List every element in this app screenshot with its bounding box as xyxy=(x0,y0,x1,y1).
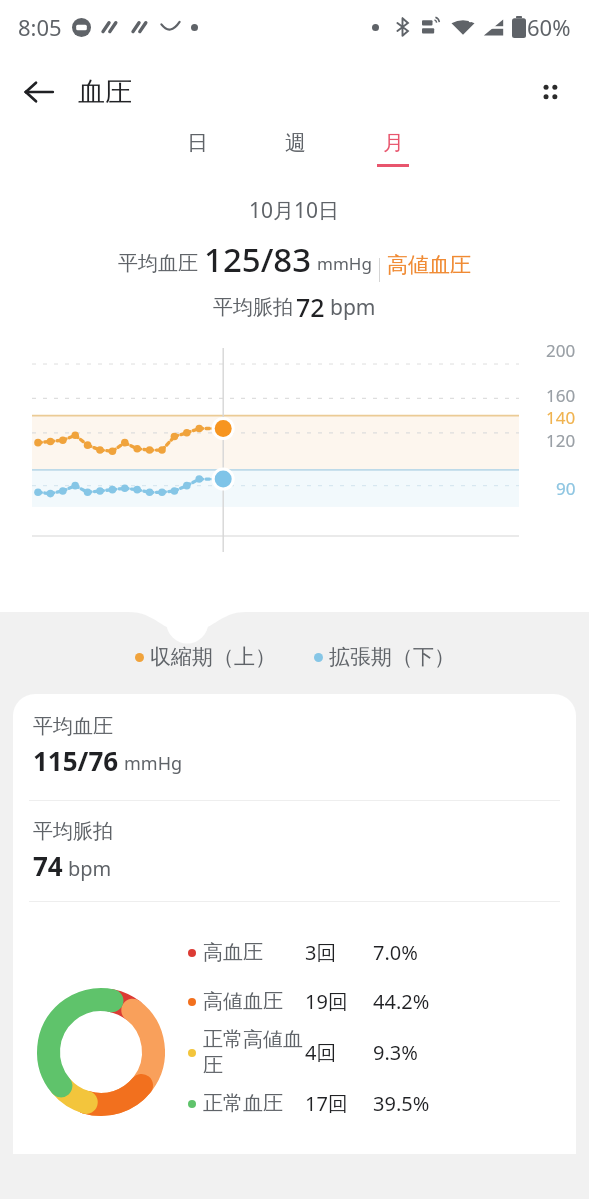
staticText: 74 xyxy=(33,848,63,883)
staticText: 平均脈拍 xyxy=(213,295,293,320)
button[interactable]: 月 xyxy=(366,130,420,167)
staticText: 125/83 xyxy=(204,237,312,282)
button[interactable]: 日 xyxy=(170,130,224,167)
button[interactable]: 正常血圧 xyxy=(188,1090,566,1117)
staticText: 平均血圧 xyxy=(33,714,113,739)
staticText: 115/76 xyxy=(33,743,119,778)
button[interactable]: 収縮期（上） xyxy=(135,644,276,670)
staticText: 44.2% xyxy=(373,988,430,1015)
staticText: 高値血圧 xyxy=(387,252,471,278)
button[interactable]: Back xyxy=(12,65,66,119)
staticText: 90 xyxy=(556,477,576,500)
staticText: 3回 xyxy=(305,939,337,966)
staticText: 高値血圧 xyxy=(203,989,283,1014)
staticText: 正常血圧 xyxy=(203,1091,283,1116)
staticText: 収縮期（上） xyxy=(150,644,276,670)
staticText: 19回 xyxy=(305,988,348,1015)
staticText: 8:05 xyxy=(18,12,62,42)
button[interactable]: 高血圧 xyxy=(188,939,566,966)
button[interactable]: 正常高値血圧 xyxy=(188,1027,566,1078)
staticText: bpm xyxy=(330,293,376,322)
staticText: 平均血圧 xyxy=(118,251,198,276)
staticText: 120 xyxy=(546,429,576,452)
staticText: 4回 xyxy=(305,1039,337,1066)
staticText: 140 xyxy=(546,406,576,429)
staticText: 平均脈拍 xyxy=(33,819,113,844)
staticText: 正常高値血圧 xyxy=(203,1027,305,1078)
staticText: 200 xyxy=(546,339,576,362)
staticText: 7.0% xyxy=(373,939,418,966)
staticText: 17回 xyxy=(305,1090,348,1117)
staticText: 月 xyxy=(383,130,404,156)
staticText: 週 xyxy=(285,130,306,156)
staticText: 60% xyxy=(527,12,571,42)
button[interactable]: 高値血圧 xyxy=(188,988,566,1015)
staticText: mmHg xyxy=(124,751,183,776)
staticText: 拡張期（下） xyxy=(329,644,455,670)
staticText: 10月10日 xyxy=(249,196,340,225)
button[interactable]: More options xyxy=(523,65,577,119)
staticText: 39.5% xyxy=(373,1090,430,1117)
staticText: bpm xyxy=(68,855,112,882)
staticText: 血圧 xyxy=(78,75,132,109)
staticText: 160 xyxy=(546,384,576,407)
staticText: 9.3% xyxy=(373,1039,418,1066)
staticText: 72 xyxy=(296,290,325,324)
staticText: 高血圧 xyxy=(203,940,263,965)
staticText: mmHg xyxy=(317,252,372,275)
staticText: 日 xyxy=(187,130,208,156)
button[interactable]: 週 xyxy=(268,130,322,167)
button[interactable]: 拡張期（下） xyxy=(314,644,455,670)
